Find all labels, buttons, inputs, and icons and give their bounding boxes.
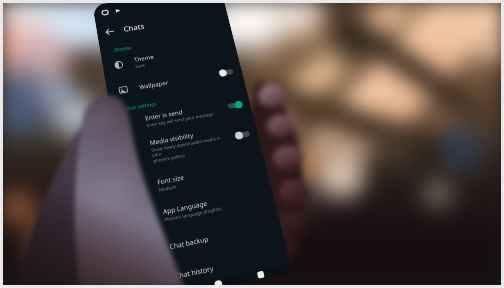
staticText: App Language	[162, 198, 208, 216]
staticText: Show newly downloaded media in your phon…	[151, 133, 233, 165]
staticText: Theme	[133, 53, 155, 64]
staticText: Wallpaper	[138, 78, 169, 91]
staticText: Enter is send	[144, 107, 184, 122]
staticText: Font size	[156, 172, 185, 187]
button[interactable]: Home	[207, 277, 229, 288]
button[interactable]: Chat backup	[132, 213, 283, 265]
staticText: Chats	[123, 21, 146, 33]
staticText: Chat history	[174, 263, 214, 281]
button[interactable]: Back	[102, 25, 117, 38]
button[interactable]: Theme	[101, 36, 238, 78]
button[interactable]: App Language	[127, 182, 276, 234]
staticText: Dark	[135, 62, 145, 69]
staticText: Medium	[158, 183, 178, 193]
button[interactable]: Recent apps	[249, 268, 271, 281]
button[interactable]: Back	[95, 3, 230, 44]
button[interactable]: Chat history	[138, 241, 291, 288]
staticText: Display	[114, 45, 132, 53]
button[interactable]: Font size	[122, 153, 268, 203]
staticText: Phone's language (English)	[164, 205, 223, 223]
button[interactable]: Media visibility	[115, 117, 261, 174]
button[interactable]: Wallpaper	[105, 61, 244, 102]
button[interactable]: Enter is send	[111, 93, 252, 137]
staticText: Chat settings	[125, 101, 157, 112]
staticText: Chat backup	[169, 234, 209, 251]
staticText: Enter key will send your message	[146, 111, 214, 128]
staticText: Media visibility	[149, 131, 194, 147]
